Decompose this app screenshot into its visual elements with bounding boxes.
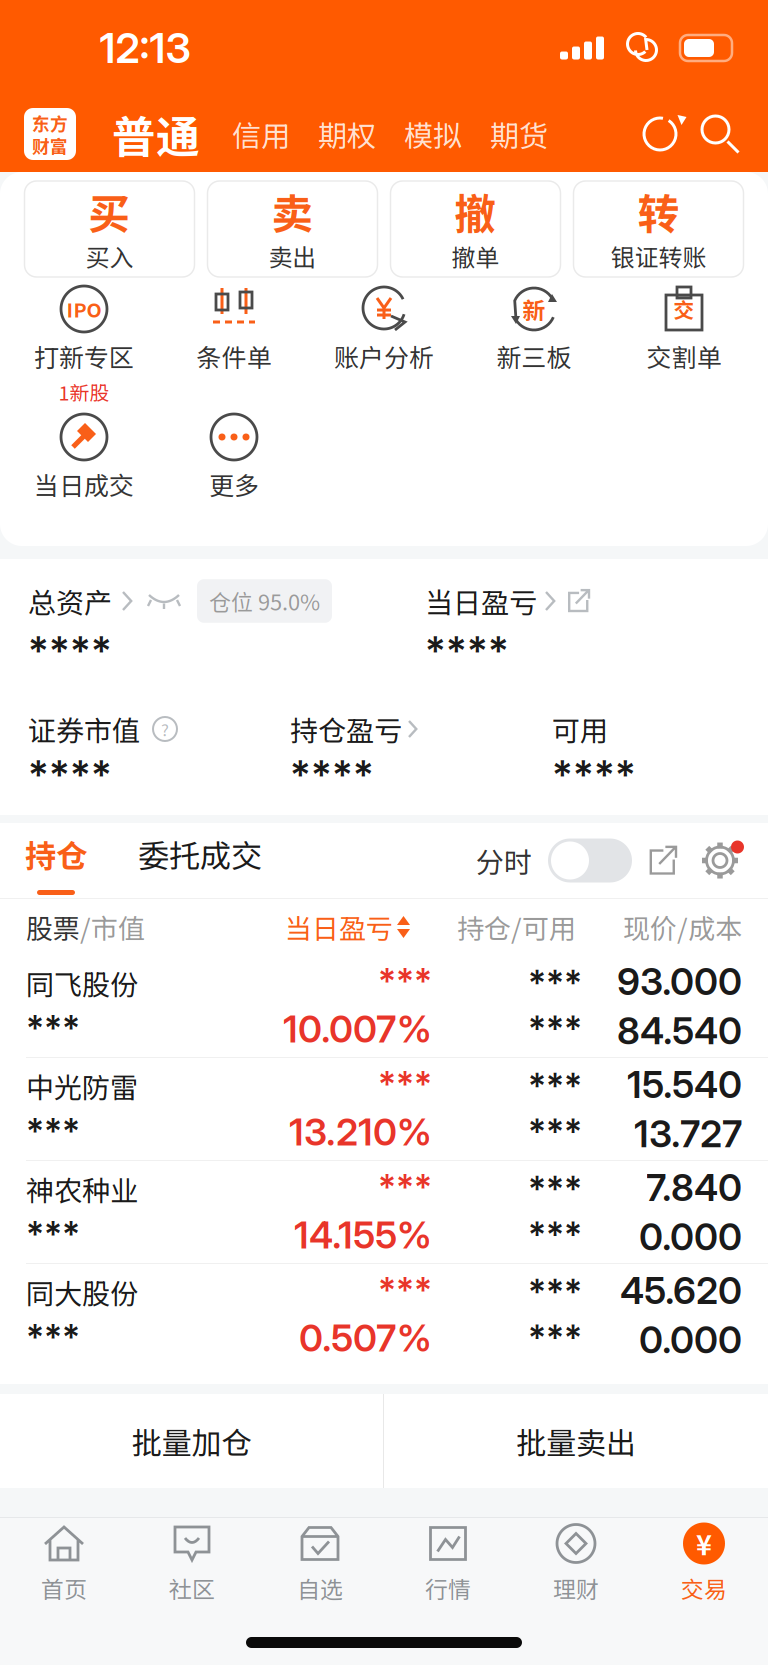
staticText: *** bbox=[528, 962, 582, 1004]
staticText: 批量卖出 bbox=[516, 1419, 636, 1463]
button[interactable]: 更多 bbox=[159, 409, 309, 537]
staticText: 神农种业 bbox=[26, 1169, 138, 1209]
staticText: 自选 bbox=[297, 1571, 343, 1605]
button[interactable]: 转 bbox=[573, 181, 743, 277]
staticText: 当日盈亏 bbox=[425, 581, 537, 621]
button[interactable]: Refresh bbox=[630, 101, 690, 167]
staticText: 撤单 bbox=[451, 239, 499, 273]
button[interactable]: 卖 bbox=[207, 181, 377, 277]
button[interactable]: 信用 bbox=[218, 101, 304, 167]
button[interactable]: 持仓 bbox=[0, 823, 112, 898]
button[interactable]: Search bbox=[690, 101, 750, 167]
button[interactable]: Share bbox=[632, 833, 694, 887]
staticText: 打新专区 bbox=[34, 338, 134, 374]
staticText: **** bbox=[552, 751, 636, 799]
button[interactable]: 中光防雷 bbox=[0, 1058, 768, 1160]
button[interactable]: 行情 bbox=[384, 1521, 512, 1617]
button[interactable]: IPO bbox=[9, 281, 159, 409]
staticText: 0.507% bbox=[299, 1315, 432, 1361]
staticText: 模拟 bbox=[404, 113, 462, 155]
staticText: 条件单 bbox=[196, 338, 271, 374]
staticText: 交割单 bbox=[646, 338, 721, 374]
staticText: 13.727 bbox=[634, 1111, 742, 1156]
staticText: *** bbox=[378, 1269, 432, 1311]
staticText: 批量加仓 bbox=[131, 1419, 251, 1463]
staticText: **** bbox=[425, 627, 509, 675]
button[interactable]: 同大股份 bbox=[0, 1264, 768, 1366]
button[interactable]: 批量卖出 bbox=[384, 1394, 768, 1488]
staticText: *** bbox=[26, 1007, 80, 1049]
staticText: *** bbox=[26, 1213, 80, 1255]
button[interactable]: 同飞股份 bbox=[0, 955, 768, 1057]
button[interactable]: 委托成交 bbox=[112, 823, 288, 898]
staticText: ? bbox=[161, 717, 169, 741]
button[interactable]: 期权 bbox=[304, 101, 390, 167]
staticText: *** bbox=[528, 1271, 582, 1313]
staticText: **** bbox=[28, 751, 112, 799]
staticText: 证券市值 bbox=[28, 709, 140, 749]
staticText: 当日成交 bbox=[34, 466, 134, 502]
staticText: *** bbox=[378, 1166, 432, 1208]
staticText: 委托成交 bbox=[138, 831, 262, 877]
staticText: 普通 bbox=[112, 102, 200, 166]
staticText: 新 bbox=[522, 292, 545, 325]
staticText: ¥ bbox=[696, 1524, 712, 1563]
button[interactable]: ¥ bbox=[640, 1521, 768, 1617]
button[interactable]: 账户分析 bbox=[309, 281, 459, 409]
staticText: 总资产 bbox=[28, 581, 112, 621]
button[interactable]: 首页 bbox=[0, 1521, 128, 1617]
staticText: **** bbox=[290, 751, 374, 799]
staticText: 10.007% bbox=[283, 1006, 432, 1052]
button[interactable]: 模拟 bbox=[390, 101, 476, 167]
staticText: 分时 bbox=[476, 840, 532, 881]
button[interactable]: Settings bbox=[696, 833, 744, 887]
button[interactable]: 自选 bbox=[256, 1521, 384, 1617]
button[interactable]: 撤 bbox=[390, 181, 560, 277]
staticText: 信用 bbox=[232, 113, 290, 155]
button[interactable]: 社区 bbox=[128, 1521, 256, 1617]
button[interactable]: 期货 bbox=[476, 101, 562, 167]
staticText: **** bbox=[28, 627, 112, 675]
staticText: 持仓 bbox=[25, 831, 87, 877]
staticText: 行情 bbox=[425, 1571, 471, 1605]
staticText: 12:13 bbox=[99, 23, 190, 73]
staticText: IPO bbox=[66, 295, 101, 323]
staticText: *** bbox=[528, 1111, 582, 1153]
staticText: 0.000 bbox=[639, 1214, 742, 1259]
button[interactable]: 当日成交 bbox=[9, 409, 159, 537]
staticText: 持仓 bbox=[457, 907, 511, 947]
staticText: 93.000 bbox=[617, 959, 742, 1004]
staticText: 持仓盈亏 bbox=[290, 709, 402, 749]
button[interactable]: 条件单 bbox=[159, 281, 309, 409]
staticText: 84.540 bbox=[617, 1008, 742, 1053]
staticText: 交 bbox=[673, 294, 694, 324]
staticText: 东方 bbox=[32, 110, 68, 135]
button[interactable]: 买 bbox=[24, 181, 194, 277]
staticText: 1新股 bbox=[58, 378, 109, 406]
staticText: 45.620 bbox=[620, 1268, 742, 1313]
staticText: 买入 bbox=[85, 239, 133, 273]
staticText: *** bbox=[528, 1065, 582, 1107]
staticText: 现价 bbox=[623, 907, 677, 947]
staticText: 首页 bbox=[41, 1571, 87, 1605]
staticText: *** bbox=[26, 1110, 80, 1152]
staticText: *** bbox=[26, 1316, 80, 1358]
staticText: *** bbox=[528, 1317, 582, 1359]
button[interactable]: 交 bbox=[609, 281, 759, 409]
staticText: 撤 bbox=[454, 181, 496, 241]
button[interactable]: 理财 bbox=[512, 1521, 640, 1617]
staticText: 买 bbox=[88, 181, 130, 241]
staticText: 13.210% bbox=[289, 1109, 432, 1155]
staticText: 卖 bbox=[271, 181, 313, 241]
staticText: 仓位 95.0% bbox=[209, 585, 320, 617]
button[interactable]: 新 bbox=[459, 281, 609, 409]
staticText: 同大股份 bbox=[26, 1272, 138, 1312]
button[interactable]: 神农种业 bbox=[0, 1161, 768, 1263]
staticText: 新三板 bbox=[496, 338, 571, 374]
button[interactable]: 普通 bbox=[76, 101, 216, 167]
staticText: 可用 bbox=[552, 709, 608, 749]
button[interactable]: 批量加仓 bbox=[0, 1394, 383, 1488]
staticText: *** bbox=[528, 1214, 582, 1256]
staticText: 卖出 bbox=[268, 239, 316, 273]
staticText: *** bbox=[378, 960, 432, 1002]
